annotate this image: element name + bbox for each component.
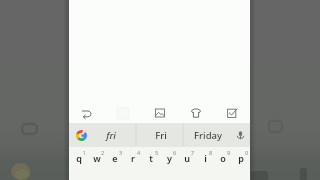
staticText: e — [112, 152, 118, 164]
staticText: w — [93, 152, 101, 164]
staticText: 6 — [173, 149, 177, 156]
staticText: 9 — [227, 149, 231, 156]
staticText: t — [149, 152, 153, 164]
button[interactable]: q — [69, 147, 88, 180]
button[interactable]: Tasks — [219, 100, 245, 126]
button[interactable]: p — [232, 147, 250, 180]
button[interactable]: u — [178, 147, 196, 180]
button[interactable]: e — [106, 147, 124, 180]
staticText: 1 — [83, 149, 87, 156]
button[interactable]: o — [214, 147, 232, 180]
staticText: 7 — [191, 149, 195, 156]
staticText: u — [184, 152, 190, 164]
button[interactable]: fri — [98, 123, 124, 147]
staticText: fri — [106, 129, 116, 142]
button[interactable]: r — [124, 147, 142, 180]
button[interactable]: Redo — [74, 100, 100, 126]
staticText: 5 — [155, 149, 159, 156]
staticText: 4 — [137, 149, 141, 156]
staticText: 2 — [101, 149, 105, 156]
staticText: o — [220, 152, 226, 164]
button[interactable]: t — [142, 147, 160, 180]
staticText: 3 — [119, 149, 123, 156]
button[interactable]: Voice input — [230, 123, 250, 147]
button[interactable]: Stickers — [183, 100, 209, 126]
button[interactable]: Emoji — [110, 100, 136, 126]
staticText: i — [204, 152, 207, 164]
button[interactable]: i — [196, 147, 214, 180]
button[interactable]: y — [160, 147, 178, 180]
staticText: p — [238, 152, 244, 164]
button[interactable]: w — [88, 147, 106, 180]
button[interactable]: Insert image — [147, 100, 173, 126]
button[interactable]: Friday — [194, 123, 222, 147]
staticText: y — [167, 152, 172, 164]
button[interactable]: Fri — [149, 123, 172, 147]
staticText: r — [131, 152, 135, 164]
staticText: q — [76, 152, 82, 164]
staticText: Friday — [194, 129, 222, 142]
staticText: Fri — [155, 129, 167, 142]
staticText: 8 — [209, 149, 213, 156]
staticText: 0 — [245, 149, 249, 156]
button[interactable]: Google — [71, 123, 91, 147]
